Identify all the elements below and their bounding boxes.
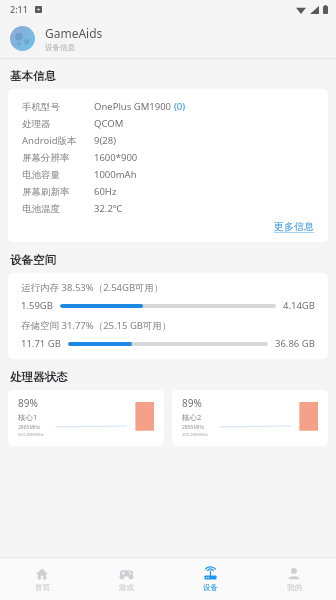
staticText: 核心2 bbox=[182, 412, 202, 422]
staticText: 2865MHz bbox=[18, 424, 41, 431]
staticText: 300-2865MHz bbox=[182, 432, 208, 437]
staticText: 手机型号 bbox=[22, 101, 60, 113]
staticText: 处理器 bbox=[22, 118, 51, 130]
staticText: 36.86 GB bbox=[275, 337, 315, 350]
staticText: 1600*900 bbox=[94, 151, 138, 164]
staticText: 核心1 bbox=[18, 412, 38, 422]
staticText: 设备信息 bbox=[45, 43, 75, 52]
staticText: 电池容量 bbox=[22, 169, 60, 181]
button[interactable]: 设备 bbox=[168, 558, 252, 600]
staticText: 游戏 bbox=[119, 583, 134, 592]
staticText: 32.2℃ bbox=[94, 202, 123, 215]
staticText: GameAids bbox=[45, 25, 103, 41]
button[interactable]: 我的 bbox=[252, 558, 336, 600]
button[interactable]: 运行内存 38.53%（2.54GB可用） bbox=[8, 273, 328, 359]
staticText: 屏幕刷新率 bbox=[22, 186, 70, 198]
staticText: 1.59GB bbox=[21, 299, 53, 312]
button[interactable]: 89% bbox=[172, 390, 328, 446]
staticText: 处理器状态 bbox=[10, 370, 68, 384]
staticText: 存储空间 31.77%（25.15 GB可用） bbox=[21, 319, 172, 332]
button[interactable]: 游戏 bbox=[84, 558, 168, 600]
staticText: 2:11 bbox=[10, 3, 28, 15]
staticText: 设备空间 bbox=[10, 253, 56, 267]
staticText: OnePlus GM1900 bbox=[94, 100, 174, 113]
staticText: 我的 bbox=[287, 583, 302, 592]
staticText: 300-2865MHz bbox=[18, 432, 44, 437]
button[interactable]: 89% bbox=[8, 390, 164, 446]
staticText: 9(28) bbox=[94, 134, 117, 147]
staticText: 首页 bbox=[35, 583, 50, 592]
button[interactable]: 首页 bbox=[0, 558, 84, 600]
staticText: 运行内存 38.53%（2.54GB可用） bbox=[21, 281, 164, 294]
button[interactable]: GameAids bbox=[0, 18, 336, 58]
button[interactable]: 手机型号 bbox=[8, 89, 328, 242]
staticText: Android版本 bbox=[22, 134, 77, 147]
button[interactable]: 更多信息 bbox=[272, 219, 316, 234]
staticText: 更多信息 bbox=[274, 220, 314, 233]
staticText: 电池温度 bbox=[22, 203, 60, 215]
staticText: 11.71 GB bbox=[21, 337, 61, 350]
staticText: 基本信息 bbox=[10, 69, 56, 83]
staticText: 4.14GB bbox=[283, 299, 315, 312]
staticText: 1000mAh bbox=[94, 168, 137, 181]
staticText: QCOM bbox=[94, 117, 124, 130]
staticText: 60Hz bbox=[94, 185, 117, 198]
staticText: 设备 bbox=[203, 583, 218, 592]
staticText: (0) bbox=[174, 100, 186, 113]
staticText: 89% bbox=[182, 396, 202, 410]
staticText: 89% bbox=[18, 396, 38, 410]
staticText: 2865MHz bbox=[182, 424, 205, 431]
staticText: 屏幕分辨率 bbox=[22, 152, 70, 164]
